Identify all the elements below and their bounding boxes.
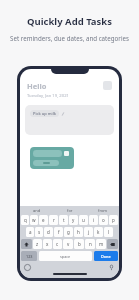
button[interactable]: y [69,215,78,225]
button[interactable]: m [96,239,106,249]
button[interactable]: Profile [103,81,112,90]
button[interactable]: h [74,227,83,237]
staticText: t [63,217,65,223]
button[interactable]: Shift [21,239,32,249]
button[interactable]: Pick up milk [25,105,114,135]
button[interactable]: Delete [107,239,118,249]
button[interactable]: b [74,239,84,249]
staticText: Pick up milk [33,111,56,116]
button[interactable]: j [84,227,93,237]
staticText: Hello [27,81,47,91]
staticText: Set reminders, due dates, and categories [10,34,129,42]
staticText: for [67,208,73,213]
button[interactable]: l [104,227,113,237]
staticText: Tuesday, Jan 19, 2021 [27,93,69,99]
button[interactable]: Dictate [108,264,115,271]
button[interactable]: 123 [21,251,37,261]
staticText: u [82,217,85,223]
staticText: k [97,229,100,235]
button[interactable]: space [39,251,92,261]
button[interactable]: g [64,227,73,237]
staticText: space [60,254,71,259]
staticText: and [33,208,41,213]
button[interactable]: d [44,227,53,237]
staticText: n [89,241,92,247]
staticText: a [29,229,32,235]
button[interactable]: f [54,227,63,237]
button[interactable]: w [30,215,38,225]
staticText: o [102,217,105,223]
staticText: i [93,217,95,223]
staticText: c [56,241,59,247]
staticText: g [67,229,70,235]
staticText: h [77,229,80,235]
button[interactable]: t [59,215,68,225]
button[interactable]: e [39,215,48,225]
button[interactable]: x [43,239,52,249]
button[interactable]: c [53,239,62,249]
staticText: Done [101,254,111,259]
staticText: x [46,241,49,247]
button[interactable]: v [63,239,73,249]
staticText: Quickly Add Tasks [27,15,112,28]
button[interactable]: and [20,206,53,215]
staticText: z [36,241,39,247]
button[interactable]: z [33,239,42,249]
staticText: r [53,217,55,223]
button[interactable]: p [109,215,118,225]
staticText: b [78,241,81,247]
button[interactable]: k [94,227,103,237]
staticText: s [38,229,41,235]
button[interactable]: u [79,215,88,225]
button[interactable]: Emoji [24,264,31,271]
staticText: l [108,229,110,235]
staticText: j [88,229,90,235]
staticText: y [72,217,75,223]
button[interactable]: s [35,227,43,237]
staticText: w [32,217,36,223]
button[interactable]: Done [94,251,118,261]
staticText: d [47,229,50,235]
staticText: from [98,208,108,213]
button[interactable]: for [53,206,86,215]
button[interactable]: i [89,215,98,225]
staticText: v [67,241,70,247]
button[interactable]: q [21,215,29,225]
button[interactable] [30,147,74,169]
staticText: f [58,229,60,235]
button[interactable]: n [85,239,95,249]
staticText: e [42,217,45,223]
button[interactable]: r [49,215,58,225]
staticText: p [112,217,115,223]
staticText: 123 [26,254,33,259]
button[interactable]: from [86,206,119,215]
staticText: m [99,241,104,247]
button[interactable]: a [26,227,34,237]
button[interactable]: o [99,215,108,225]
staticText: q [24,217,27,223]
